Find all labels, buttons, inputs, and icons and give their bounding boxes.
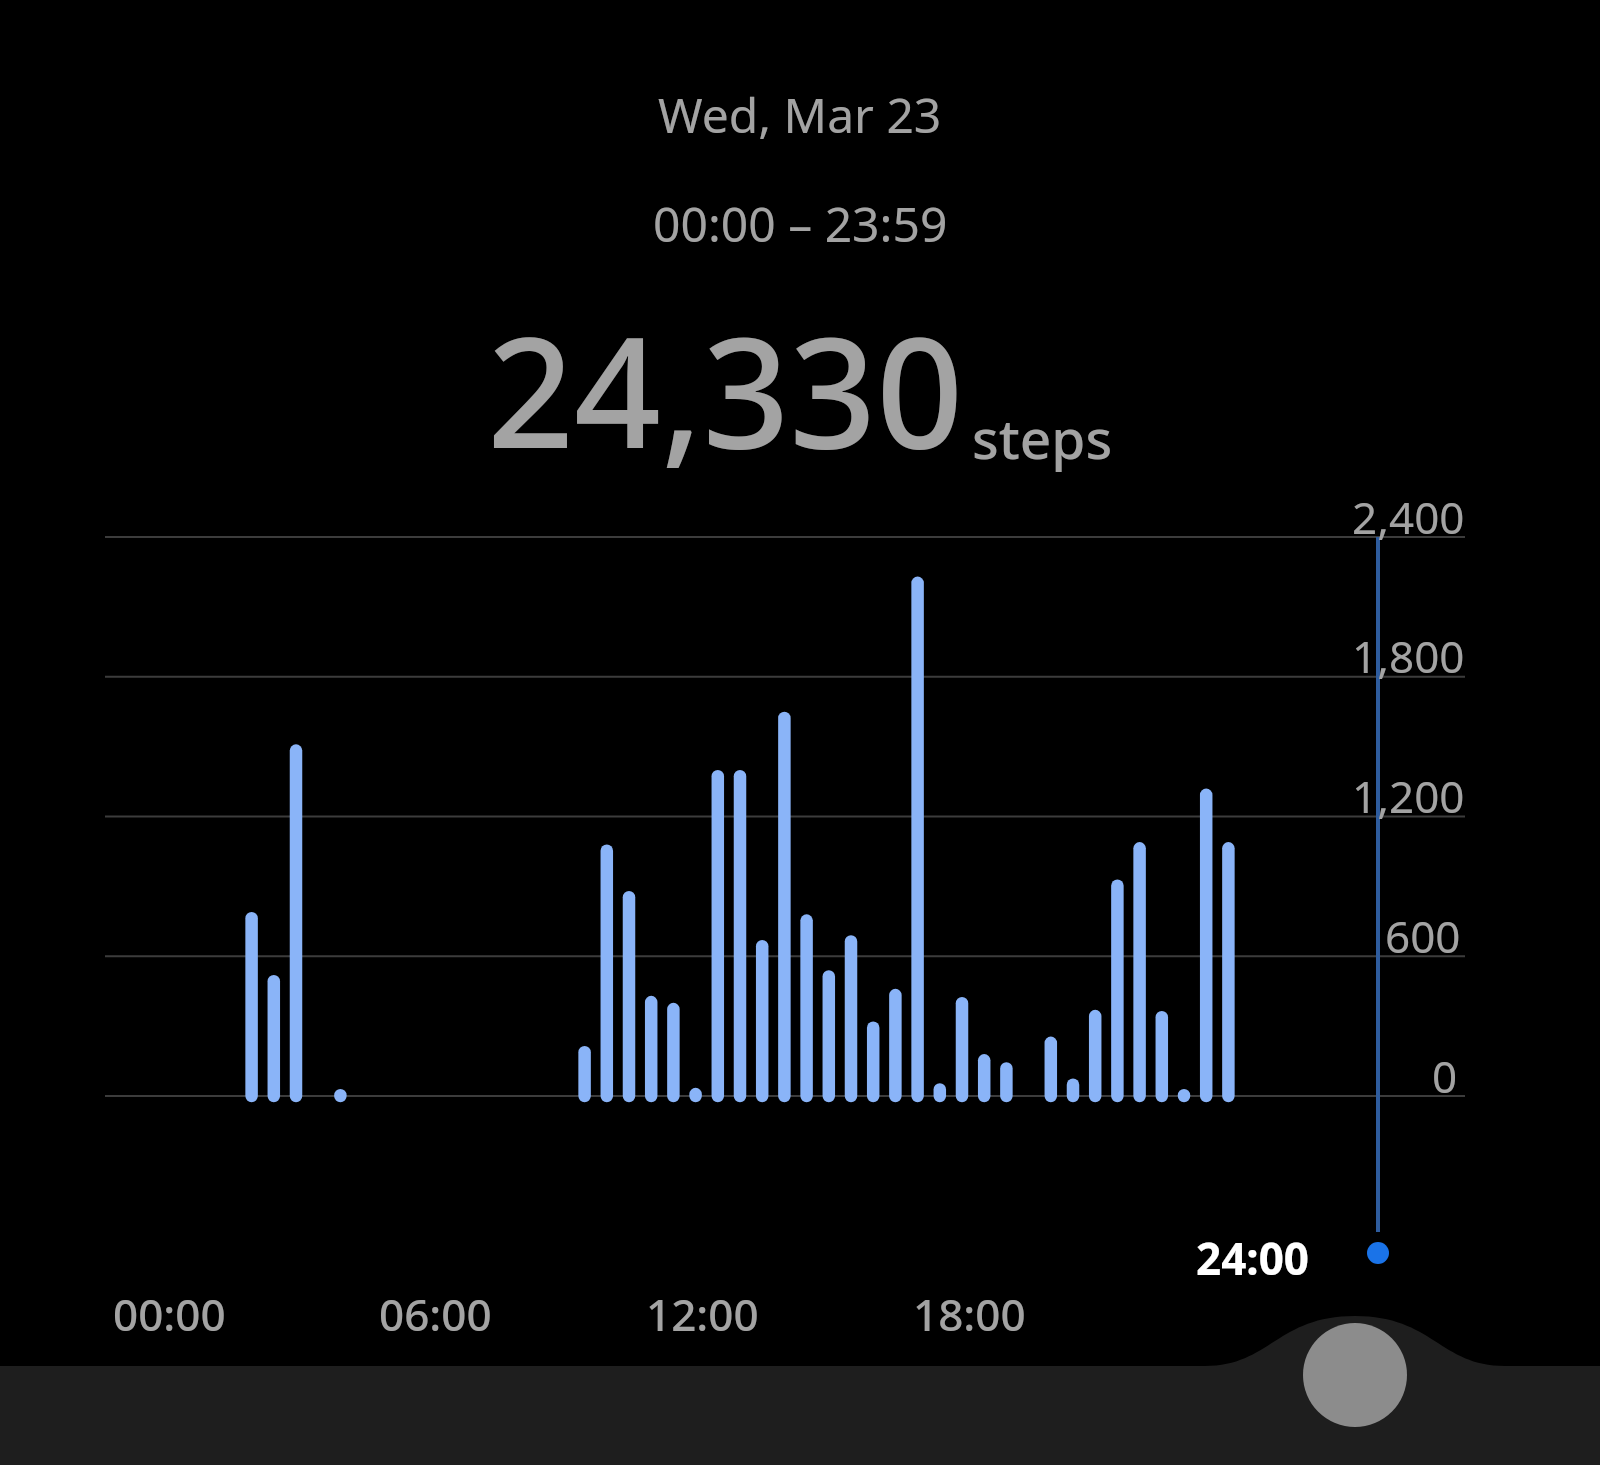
staticText: steps [972,400,1113,475]
staticText: Wed, Mar 23 [658,82,942,147]
staticText: 1,200 [1352,766,1465,826]
staticText: 18:00 [913,1284,1026,1344]
staticText: 12:00 [646,1284,759,1344]
staticText: 600 [1385,906,1461,966]
staticText: 1,800 [1352,626,1465,686]
staticText: 00:00 [113,1284,226,1344]
staticText: 06:00 [379,1284,492,1344]
staticText: 00:00 – 23:59 [653,191,948,256]
staticText: 24:00 [1196,1228,1310,1288]
button[interactable]: Record activity [1303,1323,1407,1427]
staticText: 24,330 [487,286,964,493]
staticText: 0 [1432,1046,1458,1106]
staticText: 2,400 [1352,487,1465,547]
